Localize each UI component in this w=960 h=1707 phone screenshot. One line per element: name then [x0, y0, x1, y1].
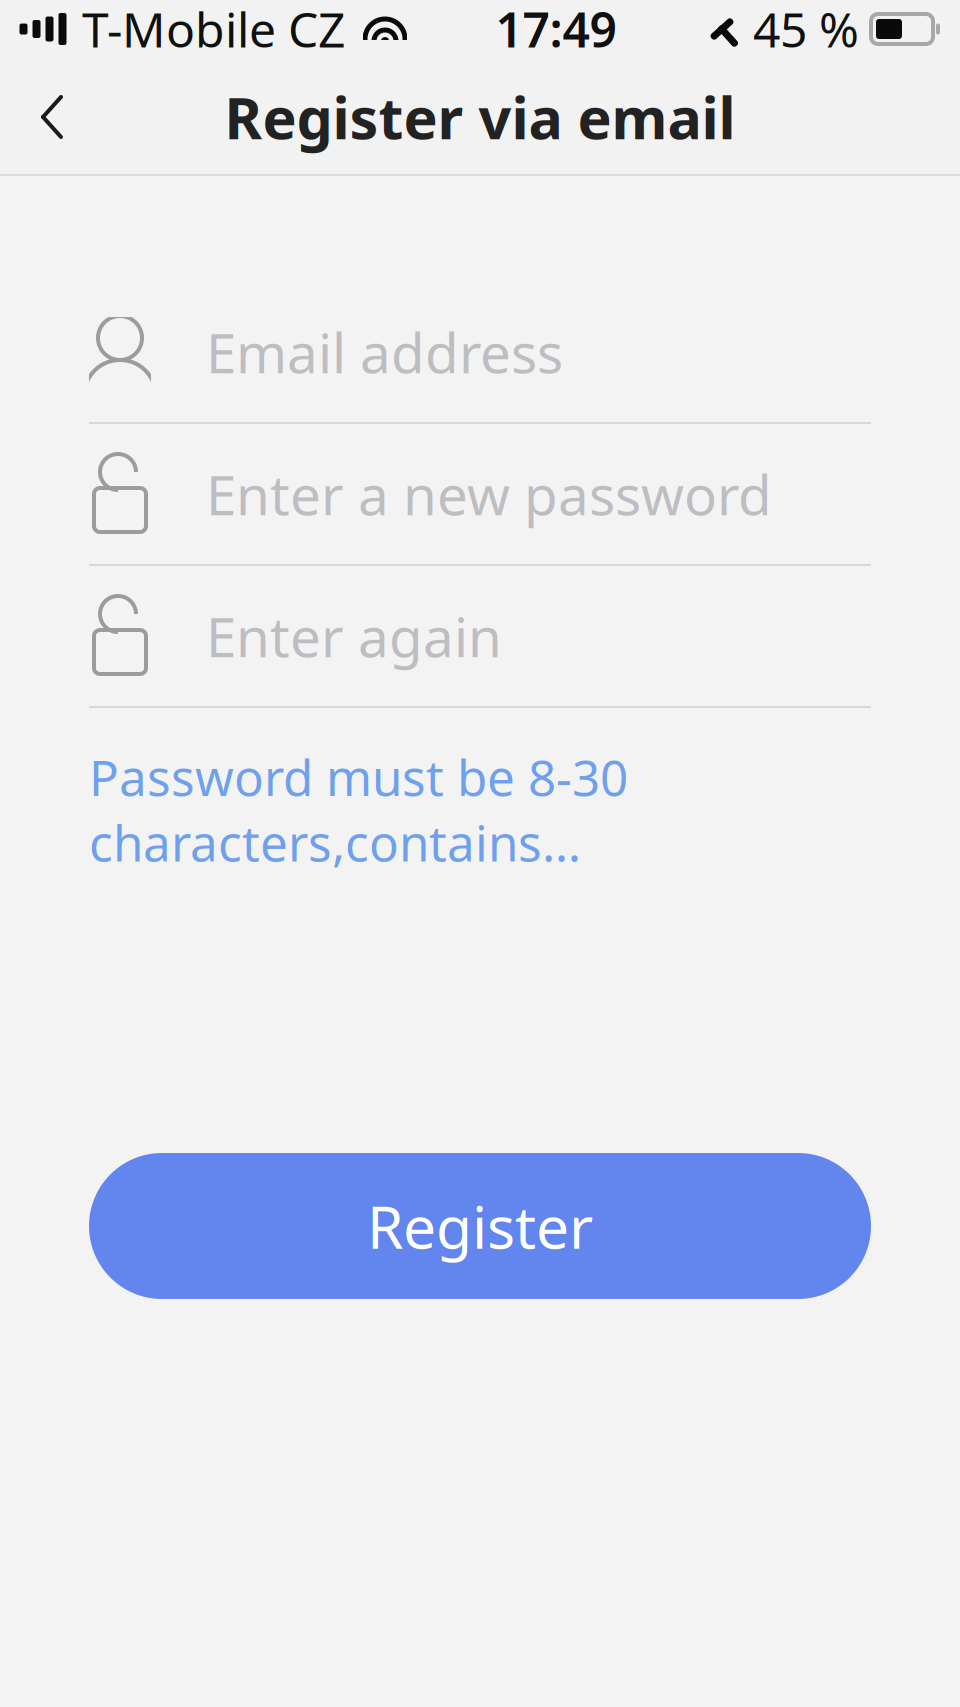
staticText: T-Mobile CZ: [82, 0, 345, 61]
button[interactable]: Enter again: [89, 566, 871, 706]
staticText: Enter again: [206, 600, 502, 672]
button[interactable]: Register: [89, 1153, 871, 1299]
staticText: Password must be 8-30 characters,contain…: [89, 744, 628, 875]
staticText: Enter a new password: [206, 458, 772, 530]
staticText: Register via email: [224, 79, 735, 155]
button[interactable]: Enter a new password: [89, 424, 871, 564]
staticText: 17:49: [495, 0, 616, 61]
staticText: 45 %: [753, 0, 859, 61]
button[interactable]: Email address: [89, 282, 871, 422]
staticText: Register: [367, 1187, 593, 1265]
staticText: Email address: [206, 316, 563, 388]
button[interactable]: Back: [0, 58, 104, 176]
